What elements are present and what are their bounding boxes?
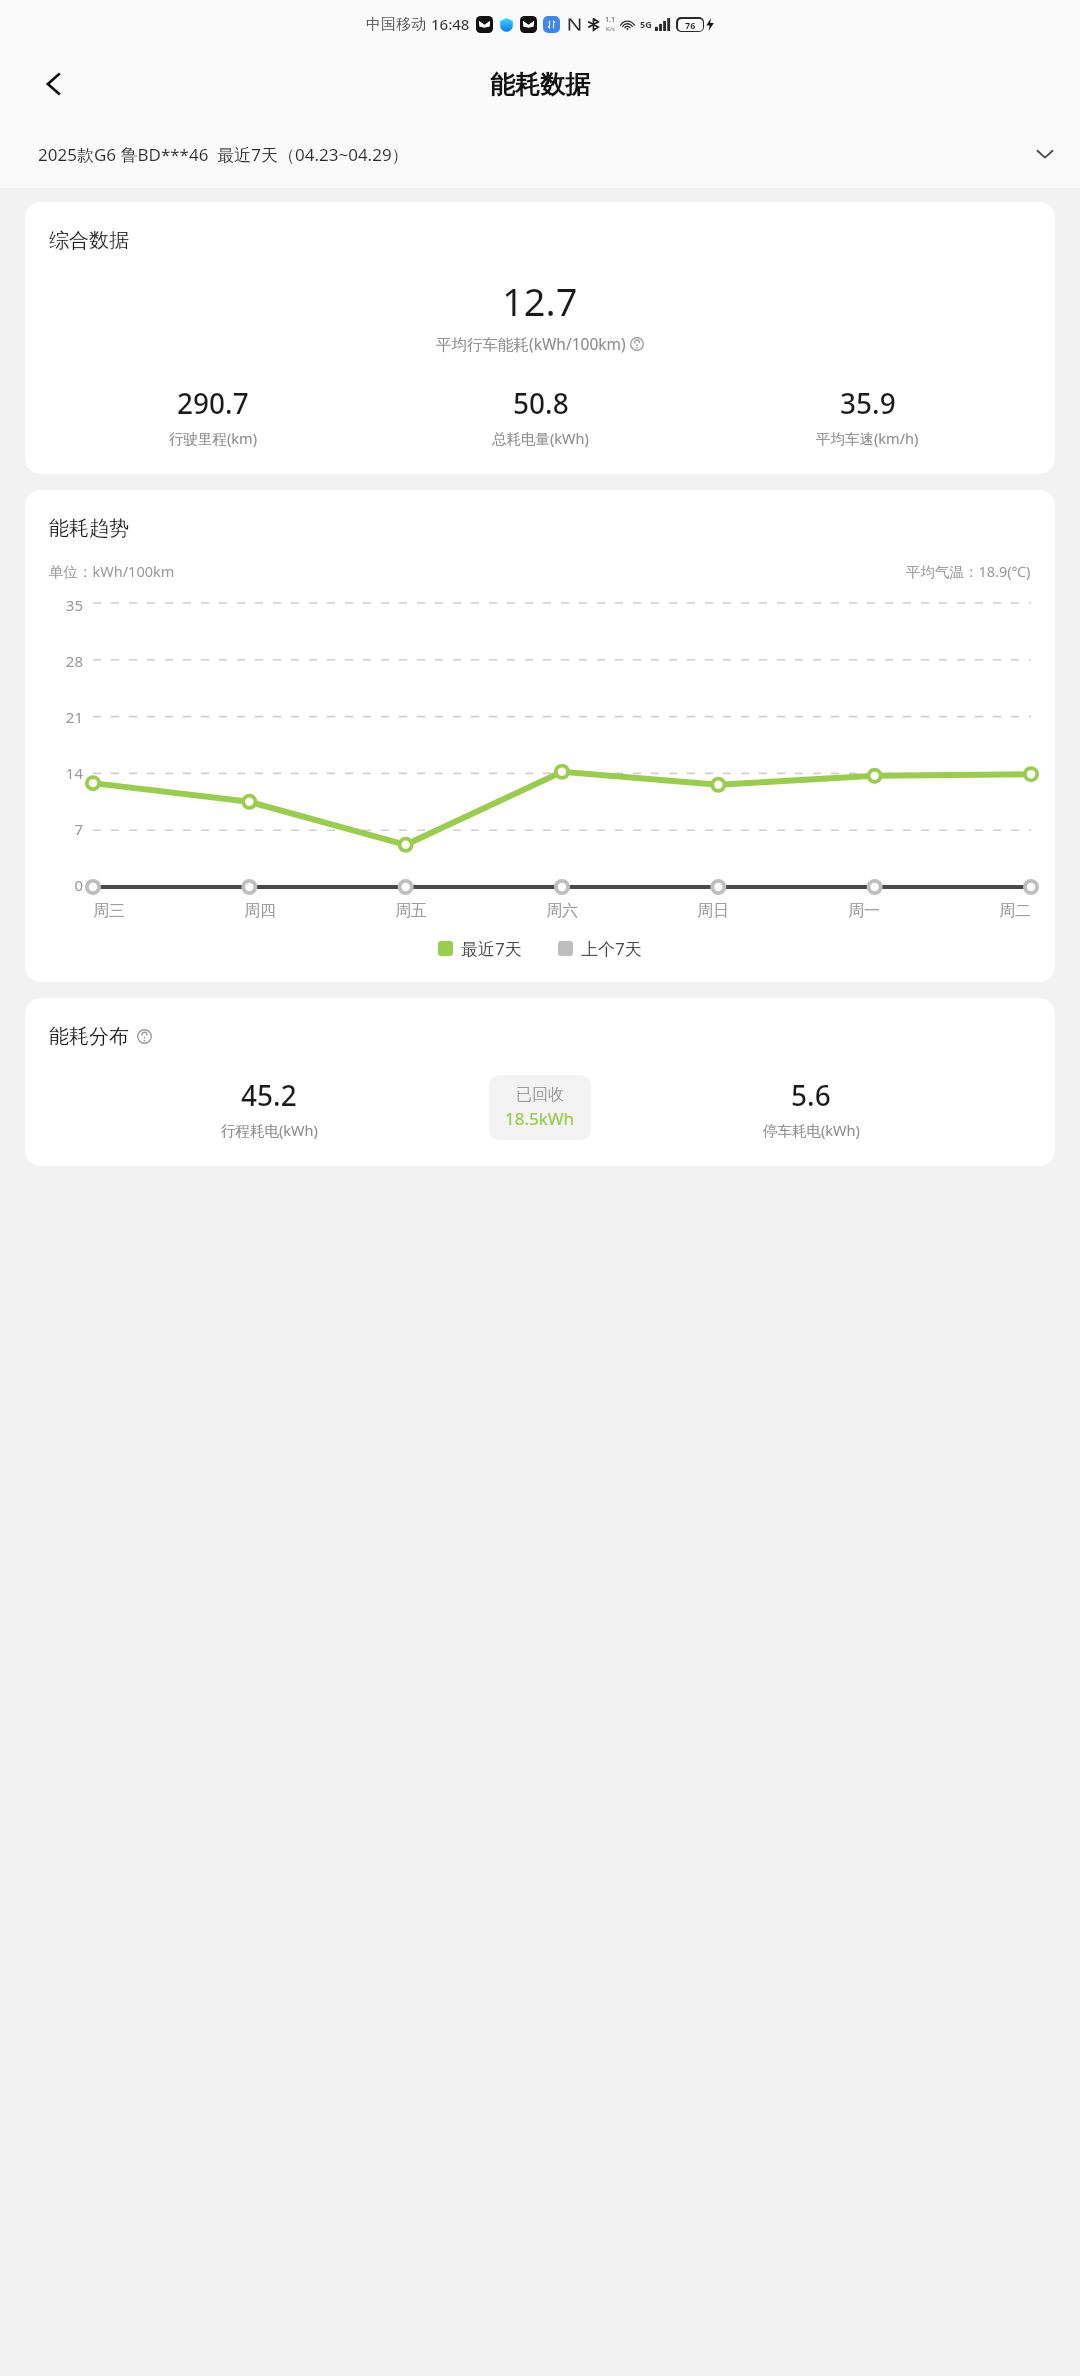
staticText: 周一 bbox=[848, 901, 880, 921]
staticText: 已回收 bbox=[516, 1085, 564, 1105]
staticText: 2025款G6 鲁BD***46 最近7天（04.23~04.29） bbox=[38, 143, 409, 166]
staticText: 周六 bbox=[546, 901, 578, 921]
staticText: 76 bbox=[685, 19, 696, 31]
button[interactable]: 2025款G6 鲁BD***46 最近7天（04.23~04.29） bbox=[0, 120, 1080, 188]
staticText: 50.8 bbox=[513, 384, 569, 422]
staticText: 平均车速(km/h) bbox=[816, 428, 919, 448]
staticText: 0 bbox=[74, 875, 83, 895]
staticText: 周五 bbox=[395, 901, 427, 921]
staticText: 能耗分布 bbox=[49, 1024, 129, 1049]
staticText: 7 bbox=[74, 819, 83, 839]
staticText: 14 bbox=[65, 763, 83, 783]
staticText: 行程耗电(kWh) bbox=[221, 1120, 318, 1140]
staticText: 能耗数据 bbox=[490, 69, 590, 100]
staticText: 单位：kWh/100km bbox=[49, 561, 175, 581]
staticText: 35.9 bbox=[840, 384, 896, 422]
staticText: 行驶里程(km) bbox=[169, 428, 258, 448]
staticText: 5.6 bbox=[791, 1076, 831, 1114]
staticText: 290.7 bbox=[177, 384, 249, 422]
staticText: 综合数据 bbox=[49, 228, 129, 253]
staticText: 停车耗电(kWh) bbox=[763, 1120, 860, 1140]
staticText: 平均气温：18.9(℃) bbox=[906, 561, 1031, 581]
staticText: 28 bbox=[65, 651, 83, 671]
staticText: 周四 bbox=[244, 901, 276, 921]
staticText: 1.1 bbox=[605, 15, 615, 25]
staticText: 18.5kWh bbox=[505, 1107, 575, 1130]
staticText: 45.2 bbox=[241, 1076, 297, 1114]
staticText: 平均行车能耗(kWh/100km) bbox=[436, 333, 626, 354]
staticText: 21 bbox=[65, 707, 83, 727]
staticText: 16:48 bbox=[431, 14, 470, 34]
staticText: 35 bbox=[65, 595, 83, 615]
staticText: K/s bbox=[606, 25, 615, 33]
staticText: 5G bbox=[640, 18, 652, 30]
staticText: 12.7 bbox=[502, 275, 578, 327]
staticText: 能耗趋势 bbox=[49, 516, 129, 541]
staticText: 中国移动 bbox=[366, 15, 426, 34]
staticText: 上个7天 bbox=[581, 937, 642, 960]
staticText: 周日 bbox=[697, 901, 729, 921]
staticText: 周二 bbox=[999, 901, 1031, 921]
staticText: 最近7天 bbox=[461, 937, 522, 960]
staticText: 周三 bbox=[93, 901, 125, 921]
button[interactable]: Back bbox=[30, 60, 78, 108]
staticText: 总耗电量(kWh) bbox=[492, 428, 589, 448]
